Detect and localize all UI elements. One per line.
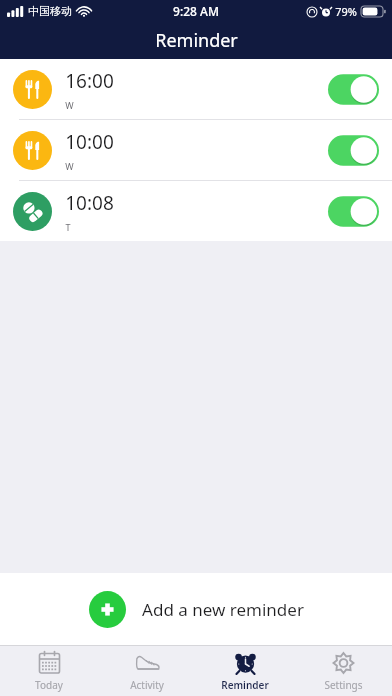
staticText: Reminder bbox=[155, 28, 238, 53]
staticText: T bbox=[65, 221, 71, 233]
button[interactable]: Add a new reminder bbox=[0, 573, 392, 645]
staticText: 9:28 AM bbox=[173, 3, 219, 19]
staticText: Today bbox=[35, 678, 63, 692]
button[interactable]: Today bbox=[0, 646, 98, 696]
staticText: 10:00 bbox=[65, 129, 114, 155]
staticText: W bbox=[65, 99, 74, 111]
button[interactable]: 16:00 bbox=[0, 59, 392, 119]
staticText: 79% bbox=[335, 4, 357, 19]
staticText: W bbox=[65, 160, 74, 172]
staticText: 中国移动 bbox=[28, 4, 72, 18]
button[interactable]: Settings bbox=[294, 646, 392, 696]
button[interactable]: 10:00 bbox=[0, 120, 392, 180]
staticText: 16:00 bbox=[65, 68, 114, 94]
staticText: Activity bbox=[130, 678, 164, 692]
button[interactable]: Toggle reminder bbox=[328, 135, 379, 166]
button[interactable]: Toggle reminder bbox=[328, 196, 379, 227]
button[interactable]: 10:08 bbox=[0, 181, 392, 241]
button[interactable]: Activity bbox=[98, 646, 196, 696]
staticText: Reminder bbox=[221, 678, 269, 692]
staticText: Settings bbox=[324, 678, 363, 692]
button[interactable]: Reminder bbox=[196, 646, 294, 696]
staticText: 10:08 bbox=[65, 190, 114, 216]
staticText: Add a new reminder bbox=[142, 598, 304, 621]
button[interactable]: Toggle reminder bbox=[328, 74, 379, 105]
